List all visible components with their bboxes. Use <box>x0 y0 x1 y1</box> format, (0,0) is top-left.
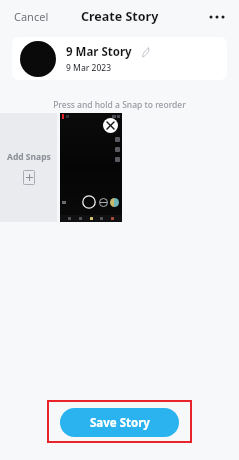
button[interactable]: Remove snap <box>103 118 118 133</box>
button[interactable]: Cancel <box>10 5 53 28</box>
staticText: Add Snaps <box>7 151 51 163</box>
button[interactable]: Add Snaps <box>0 113 57 222</box>
staticText: Save Story <box>90 415 150 431</box>
staticText: Cancel <box>14 9 49 24</box>
button[interactable]: Remove snap <box>60 113 122 222</box>
staticText: Create Story <box>81 8 159 25</box>
button[interactable]: Edit story name <box>138 45 152 59</box>
staticText: 9 Mar Story <box>66 44 132 60</box>
button[interactable]: More options <box>203 3 231 31</box>
staticText: 9 Mar 2023 <box>66 62 111 74</box>
staticText: Press and hold a Snap to reorder <box>0 99 239 111</box>
button[interactable]: Save Story <box>60 408 179 437</box>
button[interactable]: 9 Mar Story <box>12 37 227 80</box>
